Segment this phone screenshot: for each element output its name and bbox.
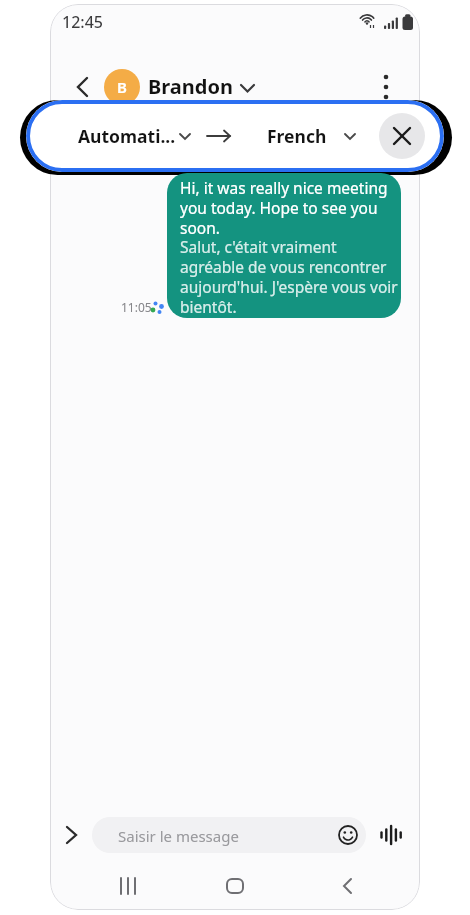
- staticText: French: [267, 124, 327, 148]
- button[interactable]: French: [262, 118, 362, 154]
- button[interactable]: [336, 823, 360, 847]
- button[interactable]: [379, 113, 425, 159]
- staticText: 11:05: [121, 299, 152, 315]
- button[interactable]: [112, 872, 144, 900]
- staticText: Salut, c'était vraiment agréable de vous…: [180, 236, 398, 317]
- button[interactable]: [219, 872, 251, 900]
- button[interactable]: Brandon: [148, 72, 260, 102]
- button[interactable]: B: [104, 69, 140, 105]
- button[interactable]: [378, 822, 404, 848]
- button[interactable]: Automati...: [70, 118, 200, 154]
- staticText: Hi, it was really nice meeting you today…: [180, 177, 388, 238]
- button[interactable]: [58, 821, 86, 849]
- staticText: B: [117, 77, 127, 97]
- staticText: Automati...: [78, 124, 176, 148]
- button[interactable]: [68, 72, 98, 102]
- staticText: 12:45: [62, 11, 103, 33]
- staticText: Saisir le message: [118, 826, 239, 846]
- staticText: Brandon: [148, 73, 233, 100]
- button[interactable]: [332, 872, 364, 900]
- button[interactable]: Saisir le message: [92, 817, 366, 853]
- button[interactable]: [372, 72, 400, 102]
